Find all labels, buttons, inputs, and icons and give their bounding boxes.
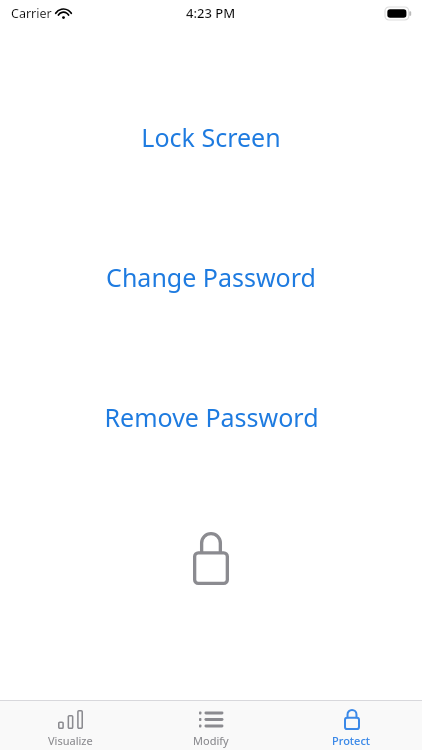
staticText: Remove Password (104, 400, 319, 434)
other: Locked (189, 528, 233, 588)
button[interactable]: Visualize (0, 703, 140, 748)
staticText: 4:23 PM (186, 4, 236, 22)
button[interactable]: Remove Password (0, 400, 422, 434)
staticText: Protect (332, 733, 371, 748)
staticText: Visualize (48, 733, 93, 748)
button[interactable]: Change Password (0, 260, 422, 294)
button[interactable]: Protect (281, 703, 422, 748)
staticText: Carrier (11, 5, 52, 22)
staticText: Change Password (106, 260, 316, 294)
staticText: Lock Screen (141, 120, 281, 154)
staticText: Modify (193, 733, 229, 748)
button[interactable]: Lock Screen (0, 120, 422, 154)
button[interactable]: Modify (140, 703, 281, 748)
